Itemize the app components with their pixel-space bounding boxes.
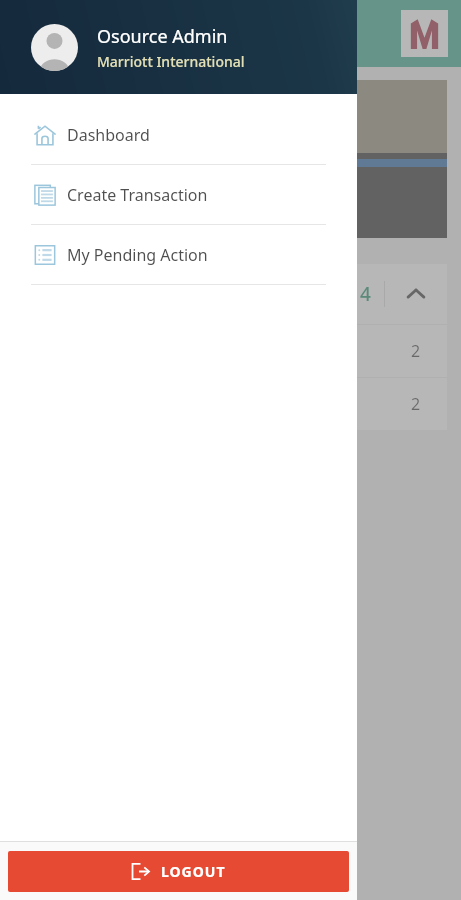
staticText: Marriott International	[97, 52, 245, 71]
staticText: 2	[411, 393, 421, 415]
button[interactable]: My Pending Action	[0, 225, 357, 284]
button[interactable]: Collapse	[385, 264, 447, 324]
staticText: My Pending Action	[67, 244, 208, 266]
staticText: 4	[360, 281, 371, 307]
staticText: Osource Admin	[97, 24, 228, 49]
button[interactable]: LOGOUT	[8, 851, 349, 892]
button[interactable]: 2	[14, 325, 447, 377]
staticText: Create Transaction	[67, 184, 208, 206]
button[interactable]: Dashboard	[0, 105, 357, 164]
button[interactable]: 2	[14, 378, 447, 430]
staticText: LOGOUT	[161, 862, 226, 881]
other: Marriott logo	[401, 10, 448, 57]
button[interactable]: Create Transaction	[0, 165, 357, 224]
staticText: Dashboard	[67, 124, 150, 146]
staticText: 2	[411, 340, 421, 362]
